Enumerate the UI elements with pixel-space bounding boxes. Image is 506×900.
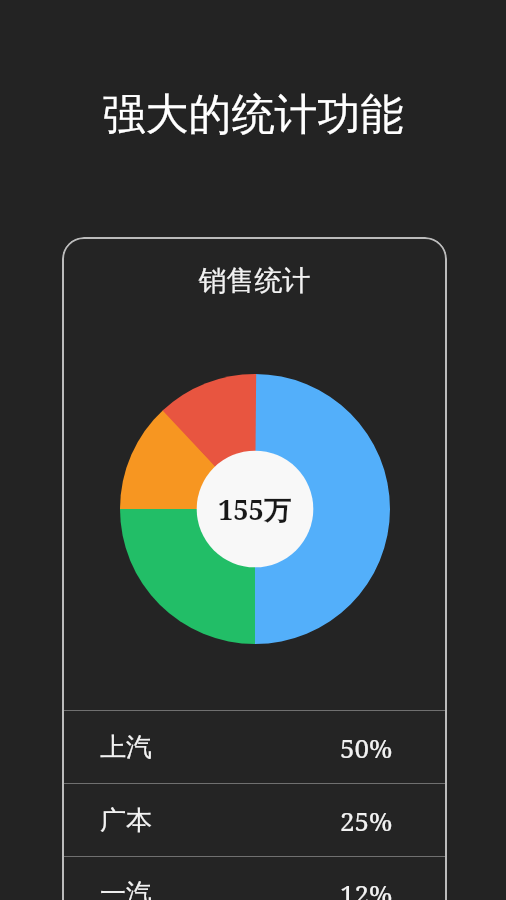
staticText: 销售统计 [62, 263, 447, 298]
other: Sales distribution pie chart [120, 374, 390, 644]
staticText: 广本 [100, 804, 152, 837]
staticText: 25% [340, 803, 393, 838]
button[interactable]: 广本 [62, 784, 447, 856]
button[interactable]: 上汽 [62, 711, 447, 783]
staticText: 155万 [218, 491, 291, 528]
button[interactable]: 销售统计 [62, 237, 447, 900]
staticText: 上汽 [100, 731, 152, 764]
button[interactable]: 一汽 [62, 857, 447, 900]
staticText: 12% [340, 876, 393, 900]
staticText: 强大的统计功能 [0, 88, 506, 142]
staticText: 50% [340, 730, 393, 765]
staticText: 一汽 [100, 877, 152, 900]
